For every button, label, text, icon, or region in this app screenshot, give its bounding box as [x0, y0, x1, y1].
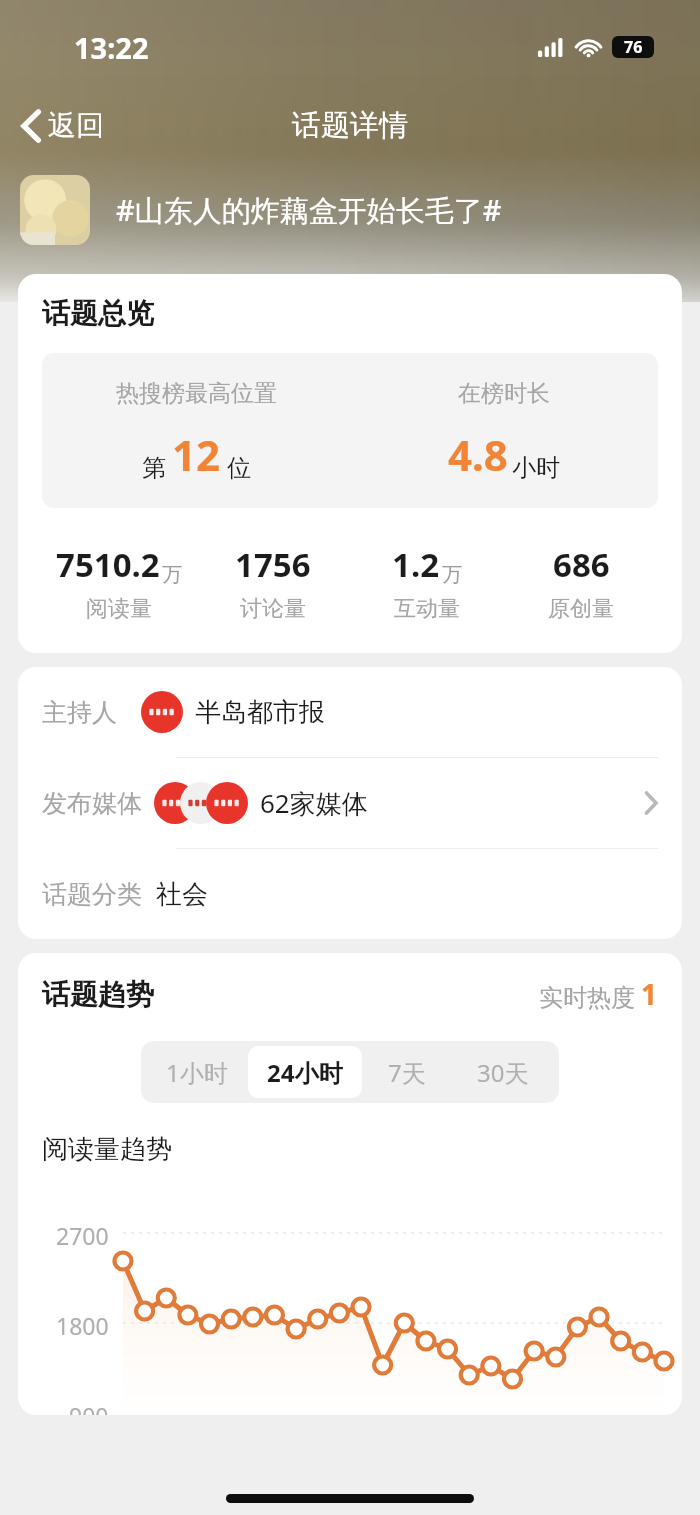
- staticText: 76: [624, 36, 643, 58]
- button[interactable]: 发布媒体: [18, 758, 682, 848]
- staticText: 62家媒体: [260, 785, 368, 821]
- staticText: 主持人: [42, 697, 117, 728]
- staticText: 第: [142, 453, 166, 483]
- staticText: 社会: [156, 878, 208, 911]
- staticText: 2700: [56, 1220, 109, 1251]
- staticText: 万: [162, 562, 182, 587]
- staticText: 在榜时长: [458, 379, 550, 408]
- staticText: 13:22: [74, 28, 149, 67]
- staticText: 话题详情: [292, 107, 408, 144]
- staticText: 返回: [48, 108, 104, 143]
- staticText: 小时: [512, 453, 560, 483]
- staticText: 7天: [388, 1056, 426, 1089]
- staticText: 发布媒体: [42, 788, 142, 819]
- button[interactable]: 7天: [362, 1046, 452, 1098]
- staticText: 1.2: [392, 542, 440, 587]
- staticText: 位: [227, 453, 251, 483]
- staticText: 30天: [477, 1056, 529, 1089]
- staticText: 686: [553, 542, 610, 587]
- staticText: 阅读量趋势: [42, 1133, 172, 1166]
- staticText: 阅读量: [86, 595, 152, 623]
- staticText: 7510.2: [56, 542, 160, 587]
- staticText: 1: [641, 975, 658, 1013]
- staticText: 讨论量: [240, 595, 306, 623]
- button[interactable]: 24小时: [248, 1046, 362, 1098]
- staticText: 热搜榜最高位置: [116, 379, 277, 408]
- button[interactable]: 1小时: [146, 1046, 248, 1098]
- staticText: 1756: [235, 542, 311, 587]
- button[interactable]: 主持人: [18, 667, 682, 757]
- staticText: 24小时: [267, 1056, 343, 1089]
- staticText: 1800: [56, 1310, 109, 1341]
- button[interactable]: 返回: [12, 100, 114, 151]
- staticText: 互动量: [394, 595, 460, 623]
- button[interactable]: 话题分类: [18, 849, 682, 939]
- staticText: 1小时: [166, 1056, 228, 1089]
- staticText: 12: [172, 426, 221, 483]
- button[interactable]: #山东人的炸藕盒开始长毛了#: [20, 162, 700, 258]
- staticText: 半岛都市报: [195, 696, 325, 729]
- button[interactable]: 686: [504, 542, 658, 623]
- staticText: 万: [442, 562, 462, 587]
- staticText: 实时热度: [539, 983, 635, 1013]
- staticText: #山东人的炸藕盒开始长毛了#: [116, 190, 502, 230]
- button[interactable]: 1756: [196, 542, 350, 623]
- staticText: 4.8: [448, 426, 508, 483]
- button[interactable]: 30天: [452, 1046, 554, 1098]
- staticText: 话题趋势: [42, 977, 154, 1012]
- staticText: 话题总览: [42, 296, 154, 331]
- button[interactable]: 1.2: [350, 542, 504, 623]
- staticText: 900: [69, 1400, 109, 1415]
- staticText: 话题分类: [42, 879, 142, 910]
- button[interactable]: 7510.2: [42, 542, 196, 623]
- other: 查看发布媒体: [644, 791, 658, 815]
- staticText: 原创量: [548, 595, 614, 623]
